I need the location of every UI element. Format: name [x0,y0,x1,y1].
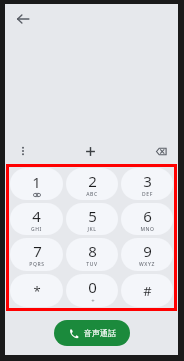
staticText: 9 [143,241,152,261]
staticText: 4 [32,206,41,226]
staticText: GHI [31,226,42,233]
staticText: 3 [143,171,152,191]
button[interactable]: 0 [66,274,118,307]
button[interactable]: 2 [66,168,118,200]
staticText: 5 [88,206,97,226]
staticText: 6 [143,206,152,226]
staticText: WXYZ [139,261,155,268]
button[interactable]: 9 [121,238,173,271]
staticText: 0 [88,277,97,297]
button[interactable]: 8 [66,238,118,271]
button[interactable]: 7 [10,238,63,271]
button[interactable]: * [10,274,63,307]
staticText: JKL [87,226,97,233]
staticText: 2 [88,171,97,191]
staticText: 1 [32,172,41,192]
button[interactable]: Add contact [79,140,101,162]
button[interactable]: 音声通話 [54,320,130,346]
staticText: TUV [86,261,98,268]
staticText: ABC [86,191,98,198]
staticText: MNO [140,226,155,233]
staticText: 音声通話 [84,328,116,338]
button[interactable]: 4 [10,203,63,235]
staticText: + [91,297,95,305]
staticText: DEF [142,191,153,198]
button[interactable]: Backspace [148,140,170,162]
staticText: PQRS [29,261,45,268]
button[interactable]: 3 [121,168,173,200]
button[interactable]: 6 [121,203,173,235]
button[interactable]: # [121,274,173,307]
staticText: 8 [88,241,97,261]
staticText: * [33,282,41,300]
button[interactable]: 1 [10,168,63,200]
staticText: # [143,282,152,300]
button[interactable]: 5 [66,203,118,235]
button[interactable]: More options [13,141,33,161]
button[interactable]: Back [11,7,35,31]
staticText: 7 [33,241,42,261]
